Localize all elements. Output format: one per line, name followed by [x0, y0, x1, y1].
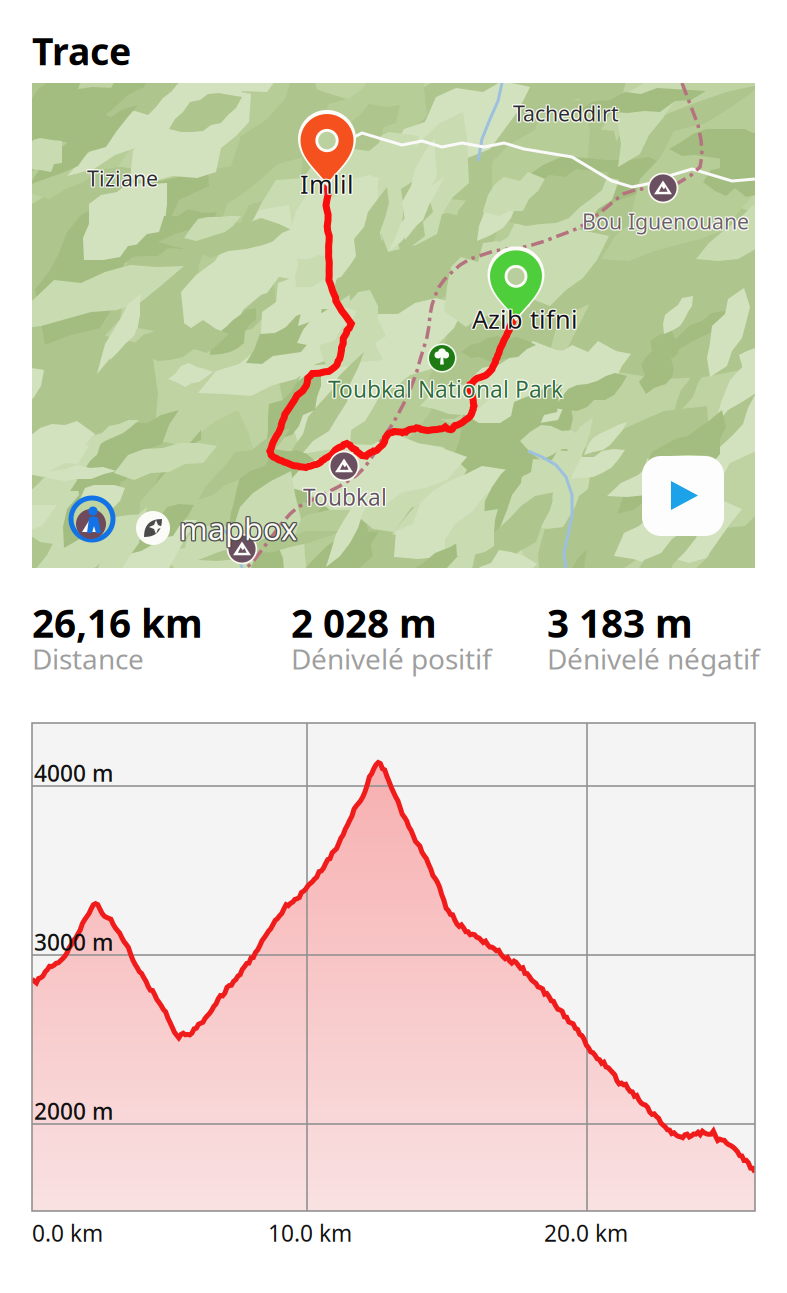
staticText: mapbox [178, 507, 296, 548]
staticText: mapbox [179, 509, 297, 550]
staticText: Toubkal National Park [328, 373, 563, 403]
staticText: Imlil [299, 166, 353, 200]
staticText: Tiziane [87, 165, 158, 193]
staticText: Bou Iguenouane [582, 207, 749, 235]
staticText: Bou Iguenouane [583, 206, 750, 234]
staticText: Tiziane [88, 164, 159, 192]
staticText: Azib tifni [472, 301, 578, 335]
staticText: Toubkal National Park [327, 374, 562, 404]
staticText: Bou Iguenouane [583, 208, 750, 236]
staticText: 3 183 m [547, 597, 693, 648]
staticText: 20.0 km [544, 1218, 628, 1248]
staticText: Toubkal [303, 483, 387, 513]
staticText: Imlil [301, 167, 355, 201]
staticText: Toubkal [302, 483, 386, 513]
staticText: 3000 m [34, 927, 113, 957]
staticText: Dénivelé négatif [547, 640, 760, 677]
staticText: Tiziane [88, 165, 159, 193]
staticText: Tacheddirt [514, 100, 620, 128]
staticText: Toubkal National Park [327, 373, 562, 403]
staticText: mapbox [180, 509, 298, 550]
staticText: Tacheddirt [514, 98, 620, 126]
staticText: Toubkal [303, 482, 387, 512]
staticText: Toubkal National Park [328, 375, 563, 405]
staticText: 26,16 km [32, 597, 203, 648]
staticText: mapbox [178, 508, 296, 549]
staticText: Tacheddirt [513, 99, 619, 127]
staticText: Toubkal National Park [328, 374, 563, 404]
staticText: Tacheddirt [512, 99, 618, 127]
staticText: Toubkal [304, 481, 388, 511]
staticText: Toubkal [302, 482, 386, 512]
staticText: mapbox [178, 509, 296, 550]
staticText: Azib tifni [473, 302, 579, 336]
staticText: Dénivelé positif [291, 640, 492, 677]
staticText: Azib tifni [471, 301, 577, 335]
staticText: Azib tifni [472, 303, 578, 337]
staticText: 10.0 km [268, 1218, 352, 1248]
staticText: Toubkal [302, 481, 386, 511]
staticText: Tiziane [87, 164, 158, 192]
staticText: Tacheddirt [512, 100, 618, 128]
staticText: 4000 m [34, 758, 113, 788]
staticText: 2000 m [34, 1096, 113, 1126]
staticText: Tacheddirt [513, 100, 619, 128]
staticText: Tiziane [87, 163, 158, 191]
staticText: Imlil [301, 166, 355, 200]
staticText: Imlil [299, 168, 353, 202]
staticText: Tacheddirt [512, 98, 618, 126]
button[interactable]: Play trace animation [642, 456, 724, 536]
staticText: Toubkal [304, 483, 388, 513]
staticText: Azib tifni [473, 303, 579, 337]
staticText: Toubkal National Park [329, 375, 564, 405]
staticText: mapbox [180, 508, 298, 549]
staticText: Azib tifni [471, 302, 577, 336]
staticText: Tacheddirt [514, 99, 620, 127]
staticText: mapbox [180, 507, 298, 548]
staticText: Azib tifni [473, 301, 579, 335]
staticText: Tiziane [86, 164, 157, 192]
staticText: Bou Iguenouane [581, 208, 748, 236]
staticText: Distance [32, 640, 144, 677]
staticText: Bou Iguenouane [582, 206, 749, 234]
staticText: Toubkal National Park [329, 373, 564, 403]
staticText: Tacheddirt [513, 98, 619, 126]
staticText: mapbox [179, 507, 297, 548]
staticText: Bou Iguenouane [583, 207, 750, 235]
staticText: Bou Iguenouane [581, 206, 748, 234]
staticText: Bou Iguenouane [581, 207, 748, 235]
staticText: mapbox [179, 508, 297, 549]
staticText: Bou Iguenouane [582, 208, 749, 236]
staticText: 2 028 m [291, 597, 437, 648]
staticText: Imlil [301, 168, 355, 202]
staticText: Tiziane [86, 163, 157, 191]
staticText: Imlil [300, 168, 354, 202]
staticText: Azib tifni [472, 302, 578, 336]
staticText: 0.0 km [32, 1218, 103, 1248]
staticText: Imlil [299, 167, 353, 201]
staticText: Tiziane [86, 165, 157, 193]
staticText: Toubkal National Park [327, 375, 562, 405]
staticText: Toubkal [304, 482, 388, 512]
staticText: Imlil [300, 167, 354, 201]
staticText: Trace [32, 26, 131, 76]
staticText: Toubkal National Park [329, 374, 564, 404]
staticText: Imlil [300, 166, 354, 200]
staticText: Tiziane [88, 163, 159, 191]
staticText: Azib tifni [471, 303, 577, 337]
staticText: Toubkal [303, 481, 387, 511]
